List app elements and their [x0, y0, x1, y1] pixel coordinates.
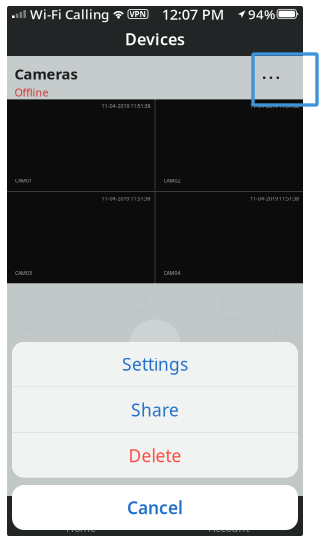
staticText: Share — [131, 398, 179, 421]
staticText: Cameras — [14, 64, 77, 84]
button[interactable]: Account — [155, 497, 303, 535]
staticText: 94% — [248, 5, 275, 23]
staticText: Cancel — [127, 496, 183, 519]
staticText: Devices — [125, 28, 185, 50]
staticText: Settings — [122, 352, 188, 375]
staticText: Home — [66, 521, 96, 535]
button[interactable]: Share — [12, 387, 298, 432]
staticText: CAM03 — [15, 269, 32, 276]
staticText: Wi-Fi Calling — [30, 5, 109, 23]
staticText: 11-04-2019 11:51:38 — [101, 195, 150, 202]
button[interactable]: Delete — [12, 433, 298, 478]
button[interactable]: More options — [239, 52, 303, 103]
staticText: 11-04-2019 11:51:38 — [250, 102, 299, 110]
staticText: CAM04 — [163, 269, 180, 276]
staticText: CAM02 — [163, 177, 180, 184]
button[interactable]: Cancel — [12, 485, 298, 530]
staticText: Offline — [14, 85, 48, 99]
button[interactable]: Home — [7, 497, 155, 535]
staticText: 11-04-2019 11:51:38 — [101, 102, 150, 110]
staticText: 12:07 PM — [162, 4, 224, 24]
staticText: Delete — [128, 444, 181, 467]
staticText: CAM01 — [15, 177, 32, 184]
staticText: VPN — [129, 9, 146, 19]
staticText: Account — [208, 521, 249, 535]
staticText: 11-04-2019 11:51:38 — [250, 195, 299, 202]
button[interactable]: Settings — [12, 342, 298, 387]
